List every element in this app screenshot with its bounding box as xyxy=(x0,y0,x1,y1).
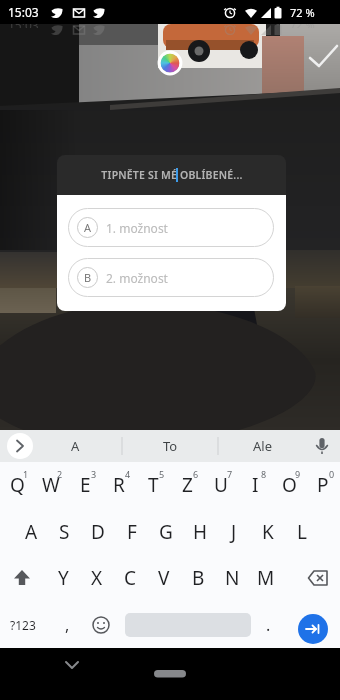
staticText: 72 % xyxy=(290,24,315,28)
button[interactable]: , xyxy=(46,601,88,648)
button[interactable]: R xyxy=(102,462,136,508)
button[interactable]: A xyxy=(68,208,274,247)
staticText: J xyxy=(231,519,237,545)
staticText: A xyxy=(25,519,38,545)
staticText: Z xyxy=(182,472,193,498)
button[interactable]: U xyxy=(204,462,238,508)
staticText: 4 xyxy=(125,468,131,480)
button[interactable]: L xyxy=(285,508,319,555)
staticText: To xyxy=(163,437,178,455)
staticText: ?123 xyxy=(10,617,36,633)
button[interactable]: Z xyxy=(170,462,204,508)
button[interactable]: N xyxy=(215,555,249,601)
staticText: 15:03 xyxy=(8,24,39,28)
button[interactable]: S xyxy=(48,508,81,555)
staticText: K xyxy=(262,519,274,545)
staticText: P xyxy=(317,472,329,498)
staticText: S xyxy=(59,519,70,545)
button[interactable]: Q xyxy=(0,462,34,508)
button[interactable]: T xyxy=(136,462,170,508)
button[interactable]: V xyxy=(147,555,181,601)
staticText: N xyxy=(225,565,240,591)
staticText: H xyxy=(193,519,208,545)
staticText: 72 % xyxy=(290,5,315,20)
button[interactable]: M xyxy=(249,555,283,601)
staticText: R xyxy=(113,472,125,498)
button[interactable]: A xyxy=(15,508,48,555)
staticText: W xyxy=(42,472,60,498)
staticText: O xyxy=(282,472,297,498)
button[interactable]: To xyxy=(140,430,200,462)
staticText: B xyxy=(192,565,205,591)
staticText: X xyxy=(91,565,103,591)
staticText: 3 xyxy=(91,468,97,480)
staticText: 1 xyxy=(23,468,29,480)
staticText: TIPNĚTE SI MÉ OBLÍBENÉ... xyxy=(101,168,243,182)
staticText: U xyxy=(214,472,228,498)
button[interactable]: K xyxy=(251,508,285,555)
staticText: A xyxy=(71,437,80,455)
button[interactable]: Y xyxy=(47,555,80,601)
staticText: G xyxy=(159,519,173,545)
staticText: F xyxy=(127,519,137,545)
staticText: 2 xyxy=(57,468,63,480)
staticText: A xyxy=(84,220,92,235)
button[interactable]: H xyxy=(183,508,217,555)
staticText: 5 xyxy=(159,468,165,480)
button[interactable]: D xyxy=(81,508,115,555)
staticText: Y xyxy=(58,565,69,591)
button[interactable]: B xyxy=(68,258,274,297)
button[interactable] xyxy=(0,555,47,601)
staticText: T xyxy=(148,472,159,498)
staticText: V xyxy=(158,565,170,591)
staticText: 0 xyxy=(329,468,335,480)
button[interactable]: A xyxy=(45,430,105,462)
staticText: , xyxy=(65,614,70,636)
button[interactable]: . xyxy=(253,601,283,648)
button[interactable]: G xyxy=(149,508,183,555)
button[interactable]: E xyxy=(68,462,102,508)
button[interactable] xyxy=(56,652,88,680)
button[interactable]: I xyxy=(238,462,272,508)
staticText: D xyxy=(91,519,105,545)
staticText: Q xyxy=(10,472,25,498)
staticText: B xyxy=(84,270,92,285)
staticText: C xyxy=(124,565,137,591)
button[interactable]: F xyxy=(115,508,149,555)
button[interactable]: P xyxy=(306,462,340,508)
button[interactable] xyxy=(283,555,340,601)
button[interactable]: B xyxy=(181,555,215,601)
staticText: M xyxy=(257,565,275,591)
button[interactable]: J xyxy=(217,508,251,555)
staticText: 9 xyxy=(295,468,301,480)
button[interactable]: W xyxy=(34,462,68,508)
button[interactable] xyxy=(298,614,328,644)
button[interactable]: O xyxy=(272,462,306,508)
staticText: E xyxy=(80,472,91,498)
staticText: Ale xyxy=(253,437,272,455)
staticText: L xyxy=(297,519,307,545)
button[interactable]: Ale xyxy=(232,430,292,462)
staticText: 6 xyxy=(193,468,199,480)
button[interactable]: X xyxy=(80,555,113,601)
staticText: 1. možnost xyxy=(106,220,168,236)
button[interactable]: ?123 xyxy=(0,601,46,648)
button[interactable] xyxy=(86,601,116,648)
staticText: 7 xyxy=(227,468,233,480)
staticText: I xyxy=(252,472,259,498)
button[interactable]: C xyxy=(113,555,147,601)
staticText: 2. možnost xyxy=(106,270,168,286)
staticText: 8 xyxy=(261,468,267,480)
staticText: 15:03 xyxy=(8,4,39,20)
staticText: . xyxy=(266,614,271,636)
button[interactable] xyxy=(150,662,190,686)
